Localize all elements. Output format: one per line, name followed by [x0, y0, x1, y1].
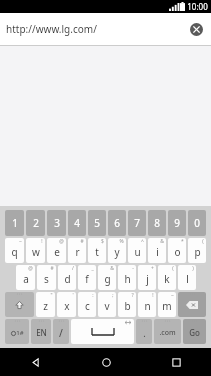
staticText: EN	[36, 327, 47, 338]
staticText: p	[194, 245, 201, 259]
staticText: f	[85, 272, 89, 286]
staticText: k	[164, 272, 170, 286]
button[interactable]: "	[36, 292, 55, 317]
button[interactable]: )	[178, 265, 196, 290]
staticText: #	[50, 265, 54, 272]
button[interactable]: *	[168, 238, 186, 263]
button[interactable]: +	[138, 265, 156, 290]
button[interactable]: !	[26, 238, 45, 263]
staticText: i	[156, 245, 159, 259]
staticText: 6	[114, 216, 120, 230]
staticText: *	[181, 238, 184, 245]
button[interactable]: Clear	[190, 23, 203, 36]
staticText: t	[95, 245, 99, 259]
staticText: e	[54, 245, 60, 259]
button[interactable]: 2	[26, 210, 45, 236]
staticText: q	[11, 245, 18, 259]
staticText: v	[104, 299, 110, 313]
staticText: l	[186, 272, 189, 286]
button[interactable]: @	[16, 265, 35, 290]
staticText: ?	[131, 292, 134, 299]
button[interactable]: (	[158, 265, 176, 290]
staticText: &	[160, 238, 164, 245]
staticText: Go	[189, 327, 200, 338]
staticText: @	[59, 238, 64, 245]
button[interactable]: 6	[108, 210, 126, 236]
button[interactable]: .	[136, 319, 152, 344]
staticText: b	[124, 299, 131, 313]
button[interactable]: /	[58, 265, 76, 290]
button[interactable]: Home	[71, 348, 141, 376]
button[interactable]: Back	[0, 348, 71, 376]
button[interactable]: EN	[31, 319, 51, 344]
button[interactable]: &	[148, 238, 166, 263]
button[interactable]: ?	[118, 292, 136, 317]
button[interactable]: %	[108, 238, 126, 263]
button[interactable]: Go	[183, 319, 206, 344]
button[interactable]: -	[118, 265, 136, 290]
button[interactable]: 4	[68, 210, 86, 236]
button[interactable]: Recent apps	[141, 348, 211, 376]
staticText: r	[75, 245, 80, 259]
staticText: .com	[159, 328, 176, 338]
button[interactable]: Space	[71, 319, 134, 344]
staticText: 0	[194, 216, 200, 230]
button[interactable]: $	[88, 238, 106, 263]
button[interactable]: :	[78, 292, 96, 317]
staticText: $	[101, 238, 104, 245]
button[interactable]: 8	[148, 210, 166, 236]
button[interactable]: /	[53, 319, 69, 344]
staticText: s	[44, 272, 49, 286]
button[interactable]: #	[37, 265, 56, 290]
staticText: g	[104, 272, 111, 286]
staticText: 9	[174, 216, 180, 230]
staticText: 5	[94, 216, 100, 230]
button[interactable]: Symbols	[5, 319, 29, 344]
staticText: 4	[74, 216, 80, 230]
staticText: ^	[141, 238, 144, 245]
staticText: n	[144, 299, 151, 313]
button[interactable]: @	[47, 238, 66, 263]
staticText: +	[151, 265, 154, 272]
staticText: m	[162, 299, 172, 313]
button[interactable]: Shift	[5, 292, 34, 317]
button[interactable]: #	[68, 238, 86, 263]
staticText: http://www.lg.com/	[6, 22, 97, 36]
staticText: 8	[154, 216, 160, 230]
staticText: j	[146, 272, 149, 286]
button[interactable]: 1	[5, 210, 24, 236]
staticText: #	[80, 238, 84, 245]
button[interactable]: 3	[47, 210, 66, 236]
button[interactable]: ~	[5, 238, 24, 263]
button[interactable]: (	[188, 238, 206, 263]
staticText: :	[92, 292, 94, 299]
button[interactable]: 0	[188, 210, 206, 236]
button[interactable]: &	[98, 265, 116, 290]
staticText: 2	[33, 216, 39, 230]
staticText: '	[72, 292, 74, 299]
staticText: o	[174, 245, 181, 259]
button[interactable]: 9	[168, 210, 186, 236]
button[interactable]: 7	[128, 210, 146, 236]
staticText: !	[41, 238, 43, 245]
button[interactable]: Backspace	[178, 292, 206, 317]
button[interactable]: 5	[88, 210, 106, 236]
staticText: (	[202, 238, 204, 245]
button[interactable]: .com	[154, 319, 181, 344]
staticText: /	[59, 326, 63, 340]
button[interactable]: '	[57, 292, 76, 317]
staticText: ~	[171, 292, 174, 299]
staticText: c	[85, 299, 90, 313]
button[interactable]: ;	[98, 292, 116, 317]
staticText: _	[91, 265, 94, 272]
staticText: d	[64, 272, 71, 286]
button[interactable]: ~	[158, 292, 176, 317]
staticText: u	[134, 245, 141, 259]
staticText: &	[110, 265, 114, 272]
staticText: z	[43, 299, 48, 313]
staticText: x	[64, 299, 70, 313]
button[interactable]: !	[138, 292, 156, 317]
button[interactable]: ^	[128, 238, 146, 263]
staticText: -	[132, 265, 134, 272]
button[interactable]: _	[78, 265, 96, 290]
